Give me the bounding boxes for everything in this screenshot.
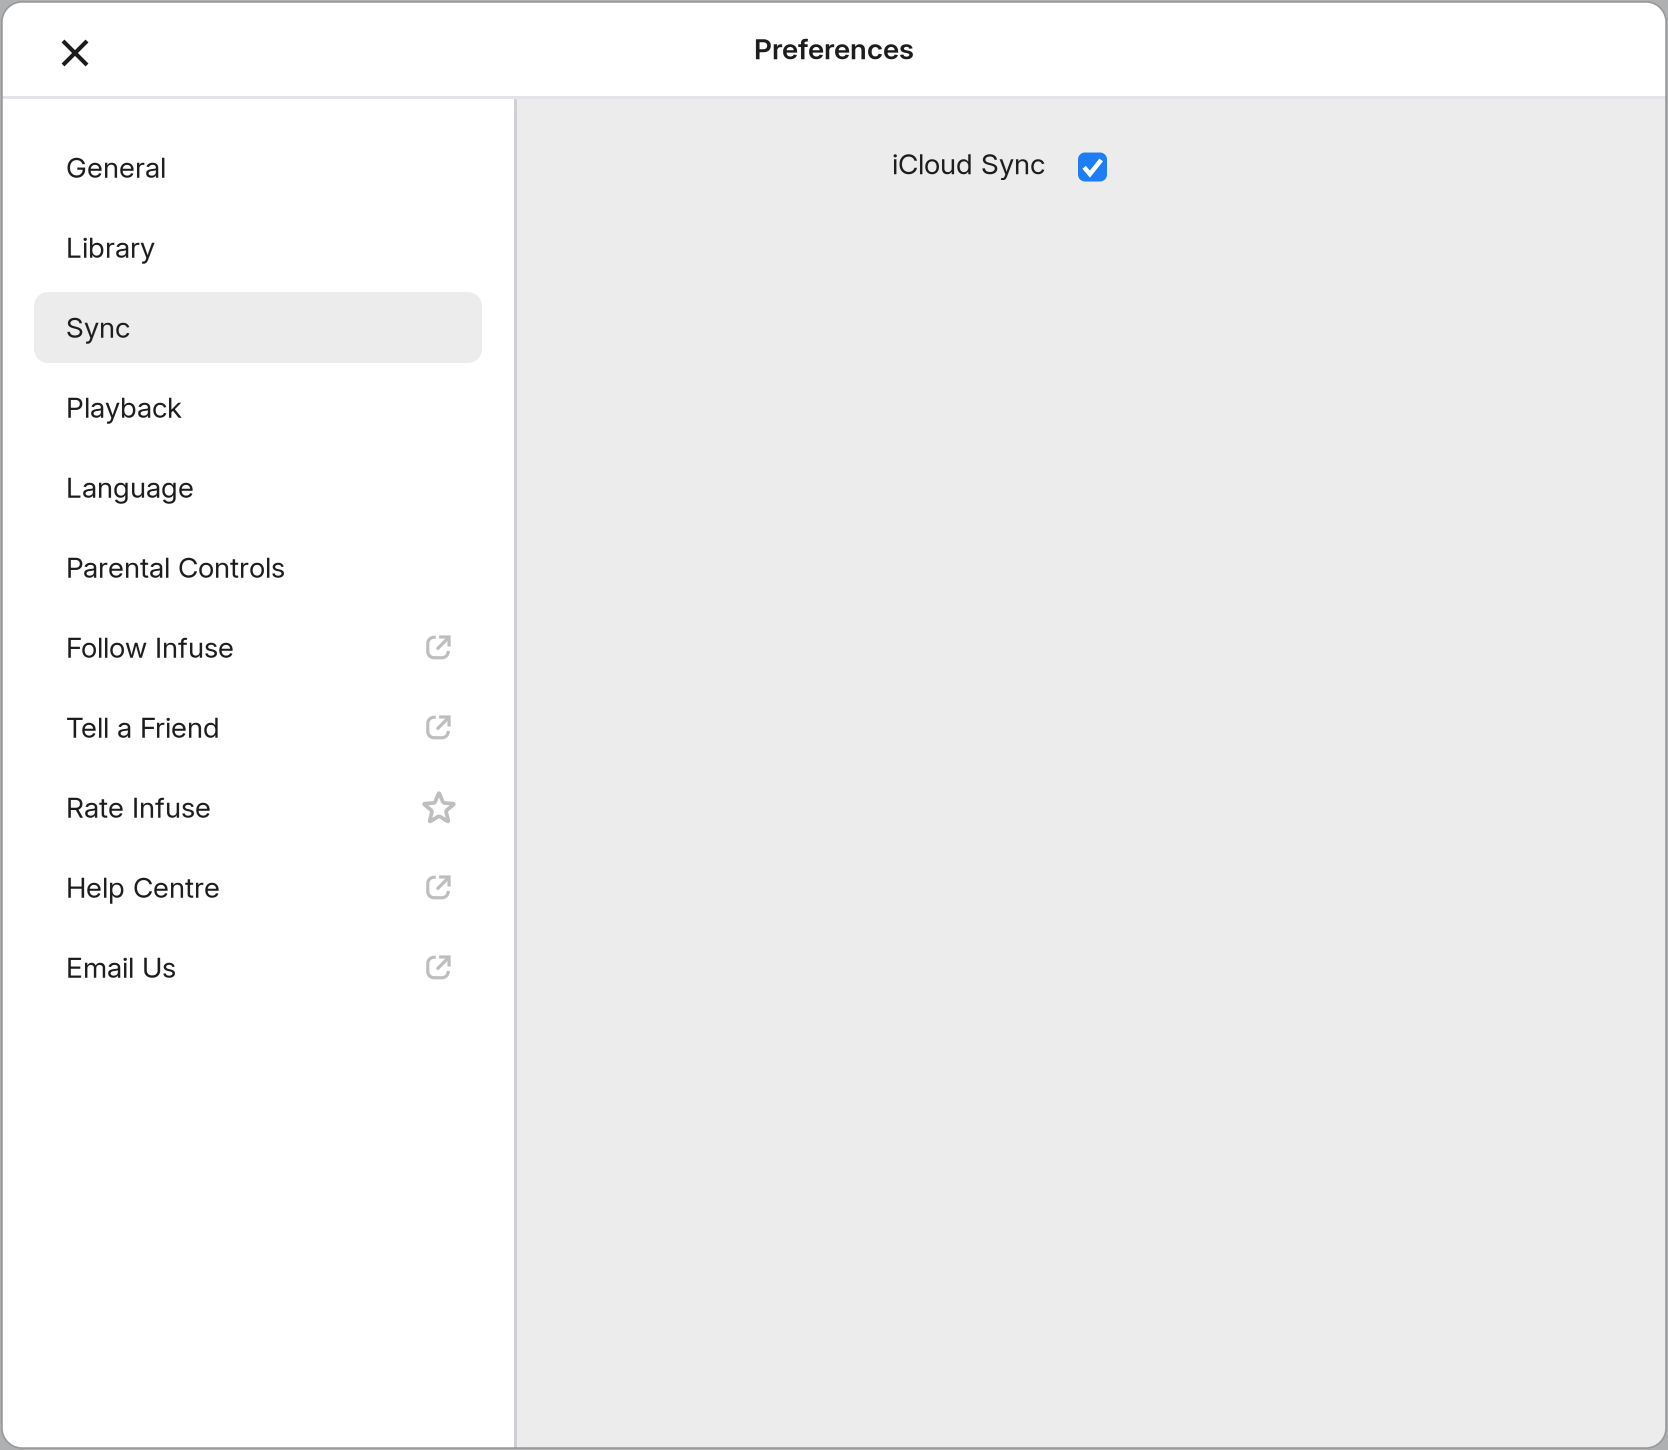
button[interactable]: Parental Controls [34,532,482,603]
button[interactable]: General [34,132,482,203]
button[interactable]: Sync [34,292,482,363]
button[interactable]: Rate Infuse [34,772,482,843]
staticText: Follow Infuse [66,631,234,664]
staticText: Help Centre [66,871,220,904]
staticText: Library [66,231,155,264]
staticText: Playback [66,391,182,424]
button[interactable]: Language [34,452,482,523]
staticText: General [66,151,166,184]
staticText: iCloud Sync [892,147,1045,181]
staticText: Tell a Friend [66,711,220,744]
staticText: Language [66,471,194,504]
staticText: Email Us [66,951,176,984]
button[interactable]: Library [34,212,482,283]
staticText: Rate Infuse [66,791,211,824]
button[interactable]: Close [31,2,125,96]
button[interactable]: Tell a Friend [34,692,482,763]
staticText: Sync [66,311,130,344]
button[interactable]: Email Us [34,932,482,1003]
button[interactable]: Help Centre [34,852,482,923]
staticText: Parental Controls [66,551,285,584]
button[interactable]: Playback [34,372,482,443]
staticText: Preferences [754,32,914,66]
button[interactable]: iCloud Sync [892,141,1107,187]
button[interactable]: Follow Infuse [34,612,482,683]
